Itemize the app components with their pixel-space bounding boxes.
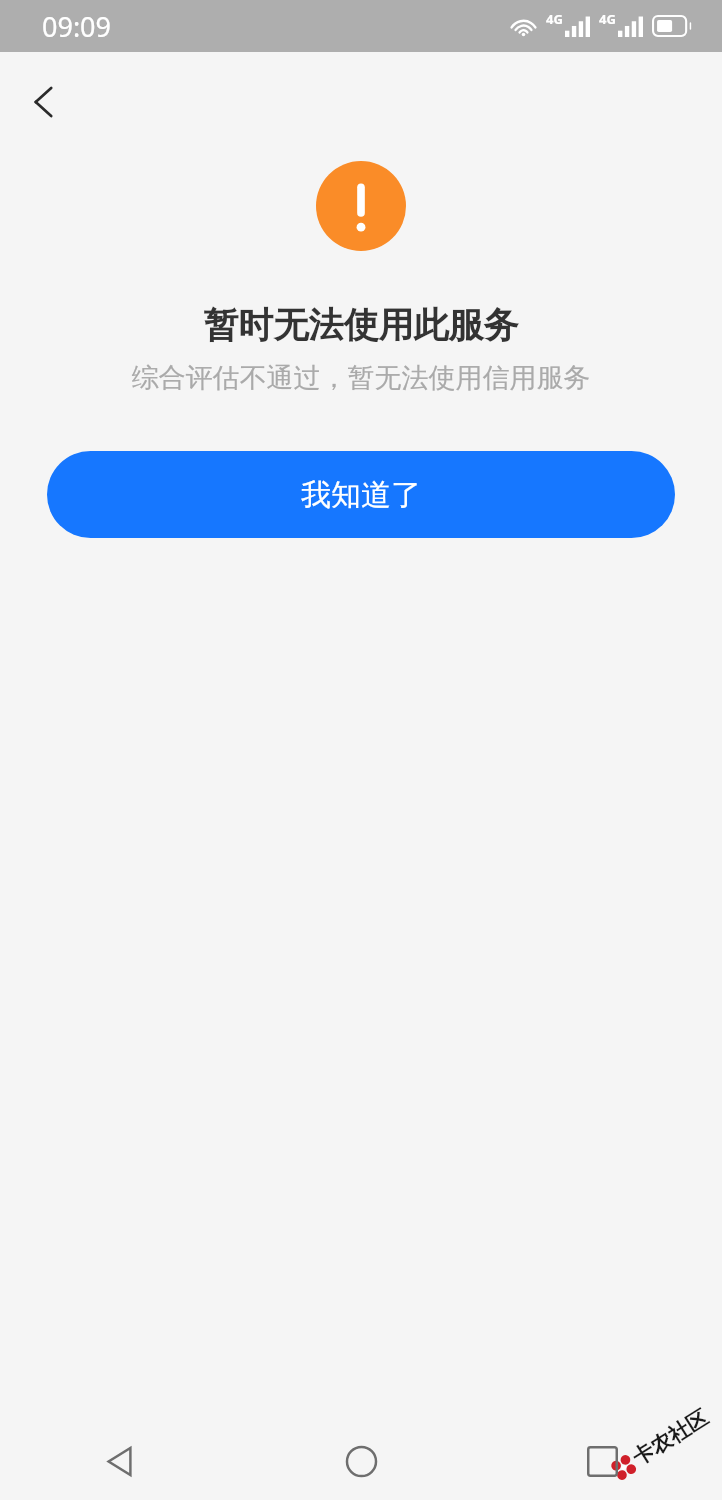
staticText: 暂时无法使用此服务 (0, 303, 722, 347)
staticText: 4G (546, 10, 563, 28)
staticText: 综合评估不通过，暂无法使用信用服务 (0, 361, 722, 395)
staticText: 09:09 (42, 8, 112, 45)
button[interactable]: Back (13, 71, 75, 133)
button[interactable]: Back (77, 1422, 163, 1500)
staticText: 我知道了 (301, 476, 421, 514)
staticText: 卡农社区 (628, 1404, 713, 1471)
button[interactable]: Recents (559, 1422, 645, 1500)
staticText: 4G (599, 10, 616, 28)
button[interactable]: Home (318, 1422, 404, 1500)
button[interactable]: 我知道了 (47, 451, 675, 538)
